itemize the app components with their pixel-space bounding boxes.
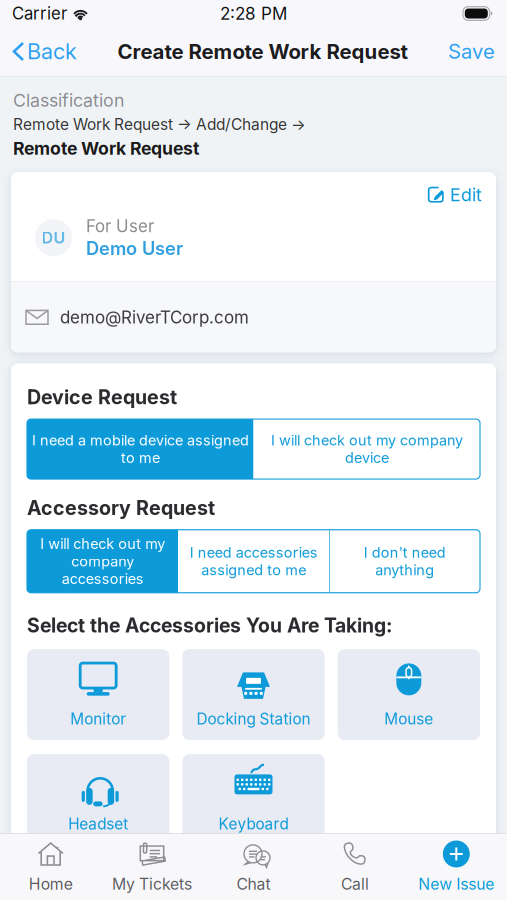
staticText: Monitor xyxy=(70,710,126,728)
staticText: I need a mobile device assigned to me xyxy=(32,432,249,466)
staticText: I need accessories assigned to me xyxy=(189,544,317,579)
button[interactable]: I will check out my company device xyxy=(253,419,480,479)
button[interactable]: Call xyxy=(304,834,406,899)
staticText: Demo User xyxy=(86,237,183,259)
button[interactable]: I will check out my company accessories xyxy=(27,530,178,593)
button[interactable]: I don't need anything xyxy=(329,530,480,593)
staticText: New Issue xyxy=(418,874,494,893)
button[interactable]: Docking Station xyxy=(182,649,325,740)
button[interactable]: My Tickets xyxy=(101,834,203,899)
staticText: Remote Work Request xyxy=(13,138,199,159)
staticText: Docking Station xyxy=(196,710,310,728)
staticText: My Tickets xyxy=(112,874,192,893)
button[interactable]: Save xyxy=(448,34,507,69)
staticText: Classification xyxy=(13,90,124,111)
staticText: Remote Work Request → Add/Change → xyxy=(13,115,306,134)
staticText: I don't need anything xyxy=(363,544,445,579)
button[interactable]: Chat xyxy=(203,834,304,899)
staticText: Carrier xyxy=(12,3,67,24)
button[interactable]: Headset xyxy=(27,754,169,845)
button[interactable]: New Issue xyxy=(406,834,507,899)
staticText: Save xyxy=(448,39,495,64)
staticText: Edit xyxy=(450,184,482,206)
staticText: demo@RiverTCorp.com xyxy=(60,307,249,328)
staticText: Create Remote Work Request xyxy=(117,39,407,64)
button[interactable]: Monitor xyxy=(27,649,169,740)
staticText: I will check out my company device xyxy=(271,432,463,466)
staticText: Headset xyxy=(68,815,128,833)
staticText: Home xyxy=(29,874,73,893)
staticText: Device Request xyxy=(27,385,177,409)
staticText: Select the Accessories You Are Taking: xyxy=(27,614,392,637)
button[interactable]: I need a mobile device assigned to me xyxy=(27,419,253,479)
staticText: DU xyxy=(41,228,65,247)
button[interactable]: Home xyxy=(0,834,101,899)
staticText: I will check out my company accessories xyxy=(40,535,165,587)
button[interactable]: Keyboard xyxy=(182,754,325,845)
staticText: Mouse xyxy=(384,710,433,728)
button[interactable]: Edit xyxy=(417,172,496,206)
button[interactable]: Mouse xyxy=(338,649,480,740)
staticText: Chat xyxy=(236,874,270,893)
staticText: Accessory Request xyxy=(27,496,215,520)
staticText: For User xyxy=(86,216,154,236)
button[interactable]: I need accessories assigned to me xyxy=(178,530,329,593)
staticText: Call xyxy=(341,874,369,893)
staticText: Back xyxy=(27,38,77,64)
button[interactable]: Back xyxy=(0,33,77,69)
staticText: 2:28 PM xyxy=(220,3,287,24)
staticText: Keyboard xyxy=(218,815,288,833)
